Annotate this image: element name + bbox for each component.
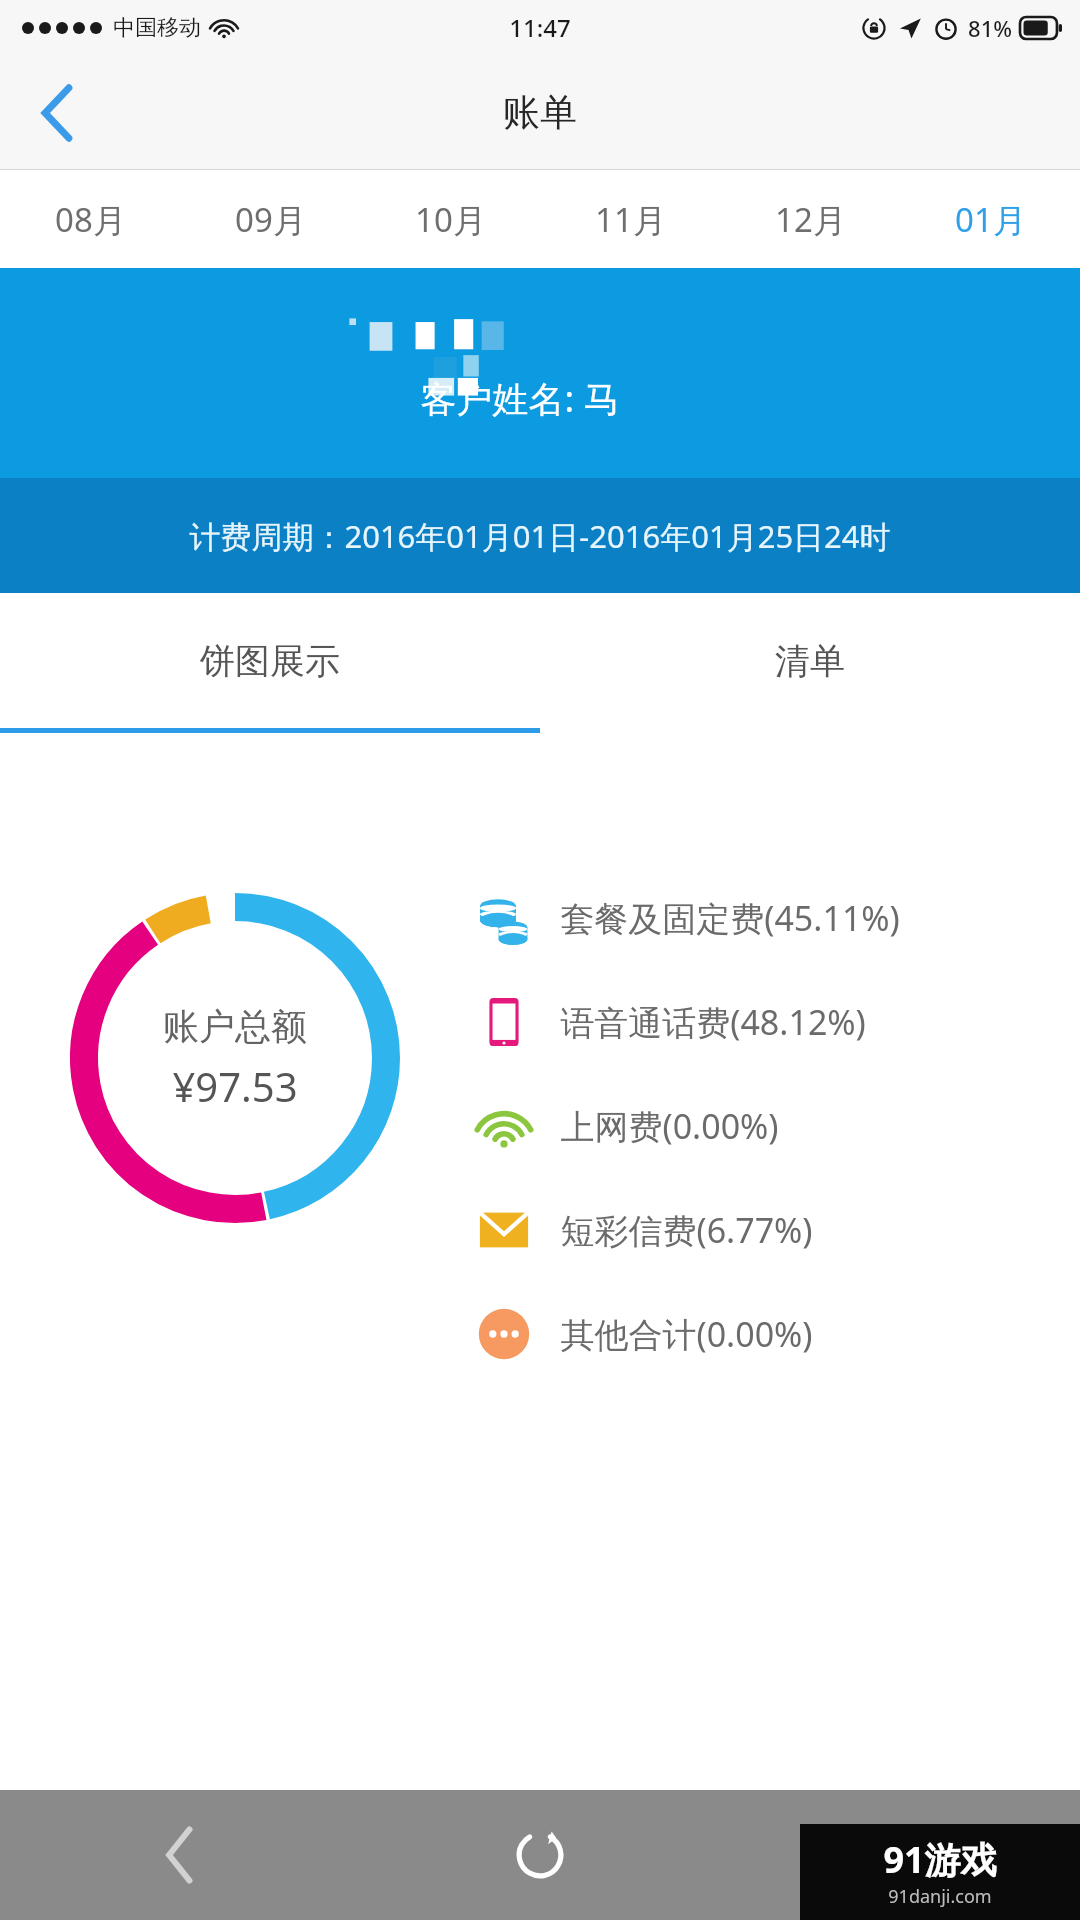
button[interactable]: Back: [0, 1790, 360, 1920]
button[interactable]: 套餐及固定费(45.11%): [470, 866, 1080, 970]
staticText: 09月: [235, 197, 306, 242]
button[interactable]: 12月: [720, 170, 900, 268]
staticText: 上网费(0.00%): [560, 1103, 779, 1149]
button[interactable]: 09月: [180, 170, 360, 268]
staticText: 账单: [503, 89, 577, 136]
staticText: ¥97.53: [172, 1059, 298, 1113]
button[interactable]: Refresh: [360, 1790, 720, 1920]
staticText: 账户总额: [163, 1004, 307, 1049]
button[interactable]: 短彩信费(6.77%): [470, 1178, 1080, 1282]
button[interactable]: 清单: [540, 593, 1080, 728]
staticText: 08月: [55, 197, 126, 242]
button[interactable]: Back: [20, 75, 96, 151]
staticText: 清单: [775, 639, 845, 683]
staticText: 81%: [968, 13, 1012, 43]
staticText: 其他合计(0.00%): [560, 1311, 813, 1357]
staticText: 饼图展示: [200, 639, 340, 683]
button[interactable]: 11月: [540, 170, 720, 268]
staticText: 短彩信费(6.77%): [560, 1207, 813, 1253]
staticText: 91游戏: [883, 1835, 997, 1884]
button[interactable]: 上网费(0.00%): [470, 1074, 1080, 1178]
staticText: 12月: [775, 197, 846, 242]
staticText: 套餐及固定费(45.11%): [560, 895, 900, 941]
staticText: 10月: [415, 197, 486, 242]
button[interactable]: 01月: [900, 170, 1080, 268]
staticText: 91danji.com: [888, 1884, 992, 1909]
staticText: 计费周期：2016年01月01日-2016年01月25日24时: [189, 515, 891, 557]
button[interactable]: 10月: [360, 170, 540, 268]
staticText: 中国移动: [113, 14, 201, 42]
staticText: 11月: [595, 197, 666, 242]
staticText: 语音通话费(48.12%): [560, 999, 866, 1045]
staticText: 客户姓名: 马: [420, 374, 620, 423]
button[interactable]: Forward: [720, 1790, 1080, 1920]
button[interactable]: 08月: [0, 170, 180, 268]
staticText: 01月: [955, 197, 1026, 242]
button[interactable]: 其他合计(0.00%): [470, 1282, 1080, 1386]
button[interactable]: 语音通话费(48.12%): [470, 970, 1080, 1074]
button[interactable]: 饼图展示: [0, 593, 540, 728]
staticText: 11:47: [509, 11, 571, 44]
